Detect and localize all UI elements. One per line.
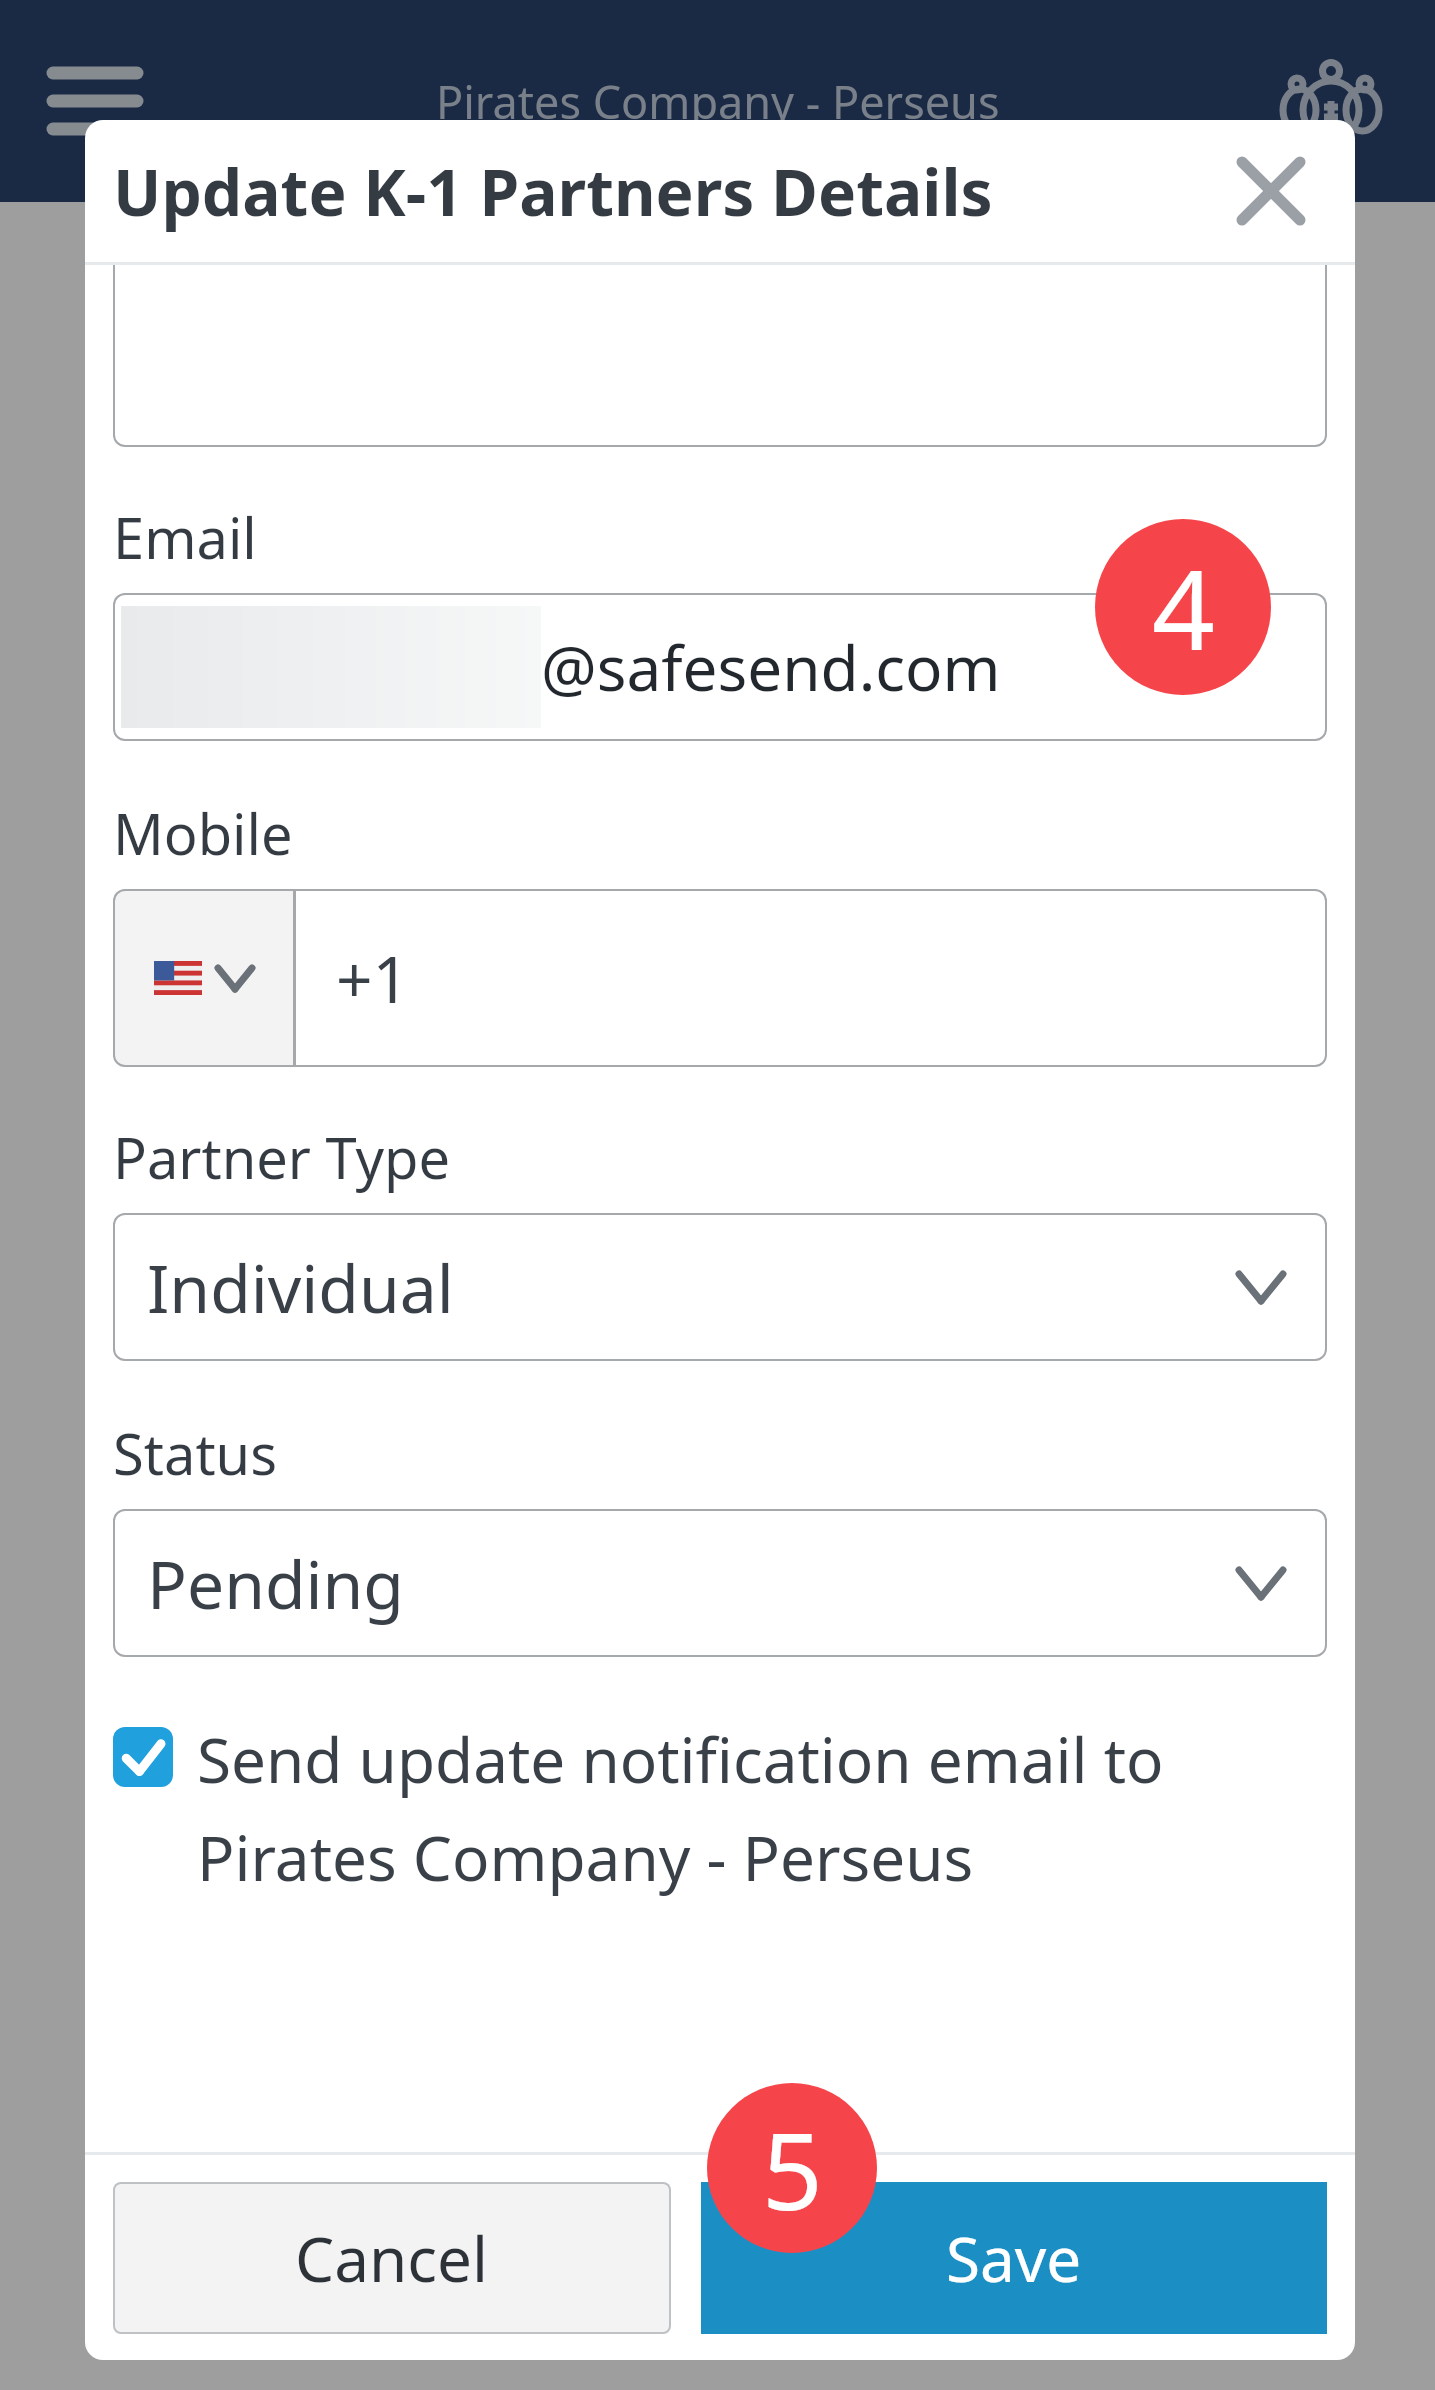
button[interactable]: Send update notification email to Pirate… — [113, 1717, 1327, 1899]
button[interactable]: @safesend.com — [113, 593, 1327, 741]
staticText: Pending — [147, 1538, 404, 1628]
staticText: In order to deliver the documents, pleas… — [52, 486, 905, 612]
staticText: Select the recipients for each document. — [52, 370, 882, 430]
button[interactable]: Pending — [113, 1509, 1327, 1657]
staticText: Pirates Company - Perseus — [436, 71, 1000, 132]
staticText: Mobile — [113, 795, 293, 871]
staticText: +1 — [336, 935, 410, 1022]
button[interactable]: Save — [701, 2182, 1327, 2334]
staticText: Save — [946, 2216, 1082, 2300]
button[interactable]: Close — [1223, 143, 1319, 239]
staticText: 5 — [762, 2096, 823, 2241]
staticText: 4 — [1152, 532, 1215, 682]
staticText: Email — [113, 499, 257, 575]
staticText: Send update notification email to Pirate… — [197, 1717, 1327, 1899]
button[interactable]: Menu — [40, 46, 150, 156]
staticText: Cancel — [295, 2216, 489, 2300]
staticText: Deliver to Client — [52, 264, 551, 348]
staticText: Update K-1 Partners Details — [113, 148, 993, 235]
staticText: Individual — [147, 1242, 454, 1332]
staticText: Status — [113, 1415, 278, 1491]
staticText: @safesend.com — [541, 625, 1001, 709]
button[interactable]: Cancel — [113, 2182, 671, 2334]
button[interactable]: Select country code — [113, 889, 293, 1067]
button[interactable]: Individual — [113, 1213, 1327, 1361]
staticText: Partner Type — [113, 1119, 451, 1195]
button[interactable] — [46, 2190, 1390, 2360]
button[interactable]: Company logo — [1271, 41, 1391, 161]
